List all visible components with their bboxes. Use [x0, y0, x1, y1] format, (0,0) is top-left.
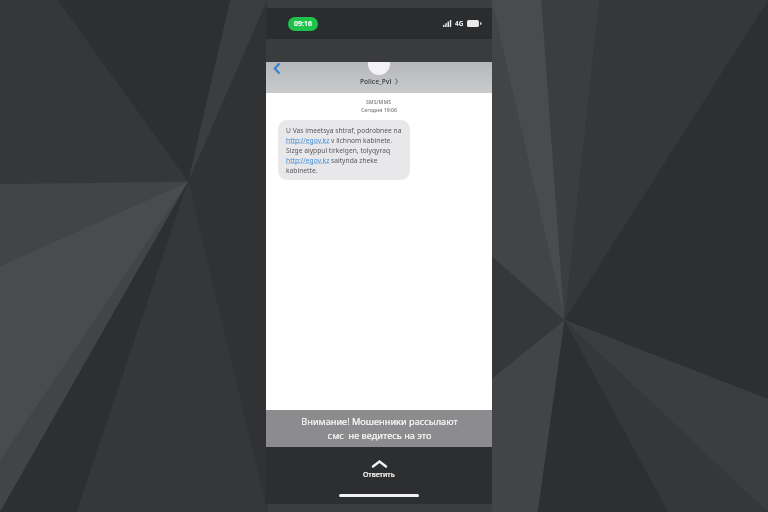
staticText: Police_Pvl: [360, 77, 392, 86]
staticText: SMS/MMS: [366, 98, 392, 105]
button[interactable]: Ответить: [266, 447, 492, 494]
staticText: 09:16: [294, 19, 312, 29]
button[interactable]: Back: [269, 60, 285, 76]
staticText: U Vas imeetsya shtraf, podrobnee na http…: [286, 126, 402, 174]
staticText: Сегодня 19:06: [361, 106, 398, 113]
button[interactable]: U Vas imeetsya shtraf, podrobnee na http…: [278, 120, 410, 180]
button[interactable]: Police_Pvl: [356, 76, 402, 87]
staticText: Внимание! Мошенники рассылают смс не вед…: [301, 415, 458, 442]
staticText: 4G: [455, 19, 464, 28]
staticText: Ответить: [363, 470, 395, 480]
